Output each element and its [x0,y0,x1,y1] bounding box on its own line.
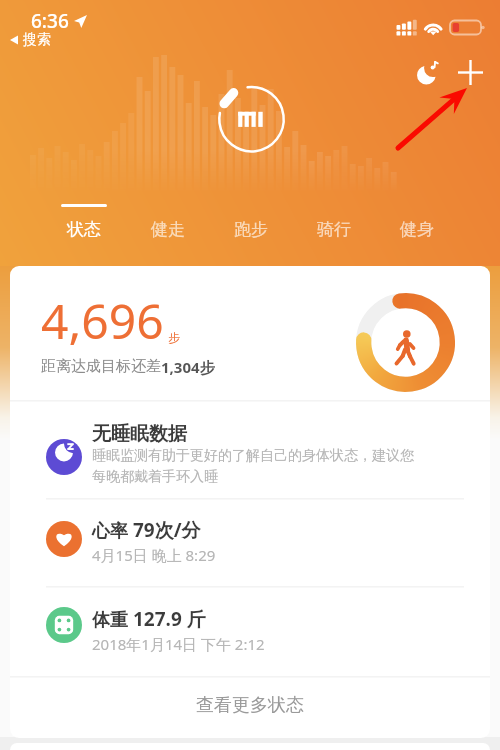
staticText: 步 [168,330,180,345]
staticText: 健走 [151,219,185,240]
staticText: 4月15日 晚上 8:29 [92,545,216,565]
button[interactable]: Sleep sounds [409,53,447,91]
staticText: 健身 [400,219,434,240]
button[interactable]: 查看更多状态 [10,677,490,738]
staticText: 2018年1月14日 下午 2:12 [92,634,265,654]
staticText: 距离达成目标还差 [41,357,161,376]
staticText: 心率 [92,518,133,543]
staticText: 6:36 [31,8,69,34]
button[interactable]: 无睡眠数据 [10,400,490,498]
button[interactable]: 健走 [126,204,209,260]
staticText: 查看更多状态 [196,694,304,717]
staticText: 体重 [92,607,133,632]
staticText: 跑步 [234,219,268,240]
button[interactable]: 体重 [10,586,490,676]
staticText: 骑行 [317,219,351,240]
staticText: 睡眠监测有助于更好的了解自己的身体状态，建议您 每晚都戴着手环入睡 [92,447,414,485]
staticText: 127.9 斤 [133,606,206,632]
staticText: 79次/分 [133,517,201,543]
staticText: 状态 [67,219,101,240]
button[interactable]: 跑步 [209,204,292,260]
staticText: 搜索 [23,31,51,49]
staticText: 1,304步 [161,357,215,377]
button[interactable]: Add [451,53,489,91]
button[interactable]: 状态 [42,204,126,260]
button[interactable]: 骑行 [292,204,375,260]
button[interactable]: 心率 [10,498,490,586]
staticText: 4,696 [41,288,164,353]
staticText: 无睡眠数据 [92,422,187,446]
button[interactable]: 健身 [375,204,458,260]
